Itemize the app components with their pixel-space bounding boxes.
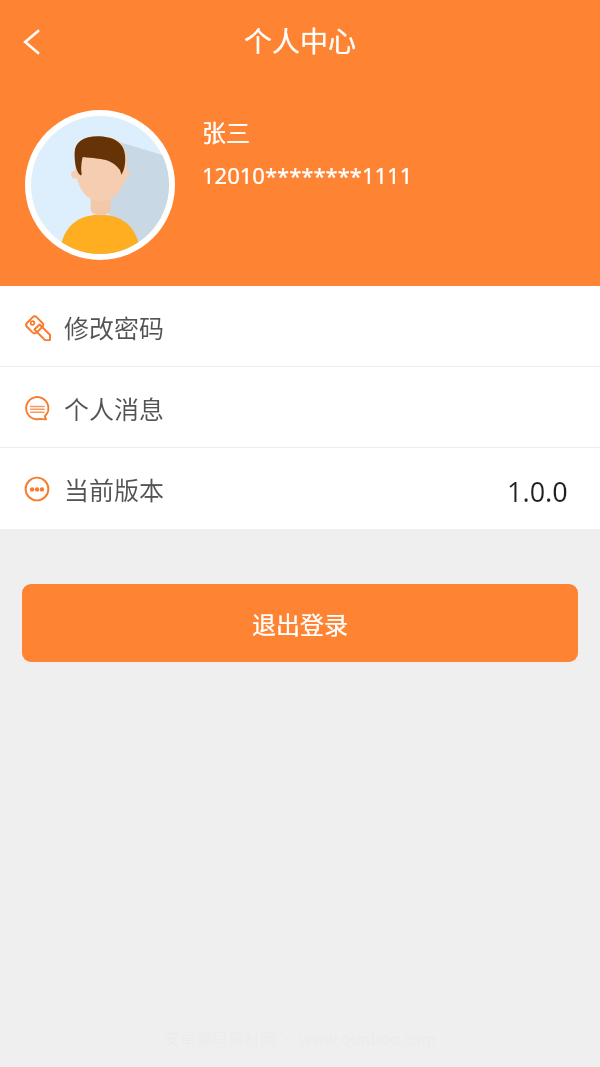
button[interactable]: 个人消息	[0, 367, 600, 448]
staticText: 修改密码	[64, 309, 165, 345]
button[interactable]: 修改密码	[0, 286, 600, 367]
staticText: 12010********1111	[202, 160, 413, 190]
button[interactable]: 退出登录	[22, 584, 578, 662]
button[interactable]: Back	[2, 14, 60, 72]
staticText: 个人消息	[64, 390, 165, 426]
staticText: 退出登录	[252, 606, 348, 641]
staticText: 当前版本	[64, 471, 165, 507]
staticText: 张三	[202, 114, 250, 149]
button[interactable]: 当前版本	[0, 448, 600, 529]
staticText: 个人中心	[244, 20, 357, 61]
staticText: 1.0.0	[507, 473, 568, 510]
